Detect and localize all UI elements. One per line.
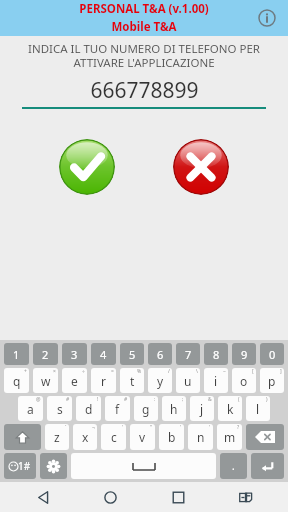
staticText: d [85,401,93,417]
button[interactable]: i [204,368,228,393]
staticText: 4 [100,347,107,362]
staticText: i [214,373,218,389]
button[interactable]: a [18,396,43,421]
staticText: x [82,429,89,445]
staticText: ] [280,368,282,375]
button[interactable]: Home [86,482,134,512]
button[interactable]: l [246,396,270,421]
button[interactable]: Period [220,453,247,479]
button[interactable]: Space [71,453,216,479]
staticText: y [157,373,164,389]
staticText: 0 [269,347,276,362]
staticText: = [111,368,114,375]
staticText: @ [36,396,41,403]
button[interactable]: u [176,368,200,393]
staticText: # [124,396,128,403]
staticText: ( [238,396,240,403]
staticText: 3 [71,347,78,362]
staticText: ` [65,424,67,431]
button[interactable]: 6 [148,343,172,365]
staticText: / [168,368,170,375]
button[interactable]: h [162,396,186,421]
staticText: r [101,373,106,389]
staticText: z [54,429,60,445]
button[interactable]: Recents [154,482,202,512]
button[interactable]: n [188,424,213,450]
button[interactable]: f [105,396,130,421]
staticText: 6 [157,347,164,362]
staticText: INDICA IL TUO NUMERO DI TELEFONO PER ATT… [8,41,280,70]
button[interactable]: x [73,424,97,450]
button[interactable]: m [217,424,242,450]
button[interactable]: 3 [62,343,87,365]
button[interactable]: Info [256,7,278,29]
button[interactable]: Shift [4,424,41,450]
button[interactable]: Switch input method [221,482,269,512]
button[interactable]: Enter [251,453,284,479]
button[interactable]: 2 [33,343,58,365]
button[interactable]: d [76,396,101,421]
button[interactable]: w [33,368,58,393]
staticText: l [256,401,260,417]
staticText: ' [180,424,182,431]
button[interactable]: Symbols [4,453,36,479]
staticText: . [232,459,235,473]
button[interactable]: v [130,424,155,450]
staticText: 7 [185,347,192,362]
staticText: ¬ [92,424,95,431]
button[interactable]: 1 [4,343,29,365]
button[interactable]: Confirm [59,139,115,195]
button[interactable]: t [120,368,144,393]
staticText: Mobile T&A [111,19,177,35]
button[interactable]: z [45,424,69,450]
button[interactable]: 9 [232,343,256,365]
button[interactable]: Cancel [173,139,229,195]
staticText: o [240,373,248,389]
staticText: f [115,401,120,417]
staticText: ~ [223,368,226,375]
staticText: b [168,429,176,445]
button[interactable]: 7 [176,343,200,365]
staticText: p [268,373,276,389]
button[interactable]: y [148,368,172,393]
button[interactable]: g [134,396,158,421]
staticText: c [111,429,117,445]
button[interactable]: j [190,396,214,421]
staticText: : [154,396,156,403]
staticText: ' [209,424,211,431]
button[interactable]: r [91,368,116,393]
staticText: j [200,401,204,417]
staticText: % [137,368,142,375]
button[interactable]: 5 [120,343,144,365]
staticText: 9 [241,347,248,362]
button[interactable]: k [218,396,242,421]
staticText: \ [196,368,198,375]
staticText: q [13,373,21,389]
staticText: h [170,401,178,417]
staticText: 5 [129,347,136,362]
staticText: g [142,401,150,417]
button[interactable]: Back [19,482,67,512]
button[interactable]: 4 [91,343,116,365]
staticText: t [130,373,135,389]
button[interactable]: 0 [260,343,284,365]
button[interactable]: s [47,396,72,421]
button[interactable]: 8 [204,343,228,365]
button[interactable]: c [101,424,126,450]
button[interactable]: Settings [40,453,67,479]
button[interactable]: q [4,368,29,393]
button[interactable]: e [62,368,87,393]
staticText: # [66,396,70,403]
button[interactable]: b [159,424,184,450]
staticText: [ [252,368,254,375]
button[interactable]: o [232,368,256,393]
button[interactable]: Backspace [246,424,284,450]
staticText: 1# [18,459,31,473]
staticText: n [197,429,205,445]
staticText: ÷ [82,368,85,375]
staticText: 1 [13,347,20,362]
button[interactable]: p [260,368,284,393]
staticText: + [24,368,27,375]
staticText: u [184,373,192,389]
staticText: ? [237,424,240,431]
